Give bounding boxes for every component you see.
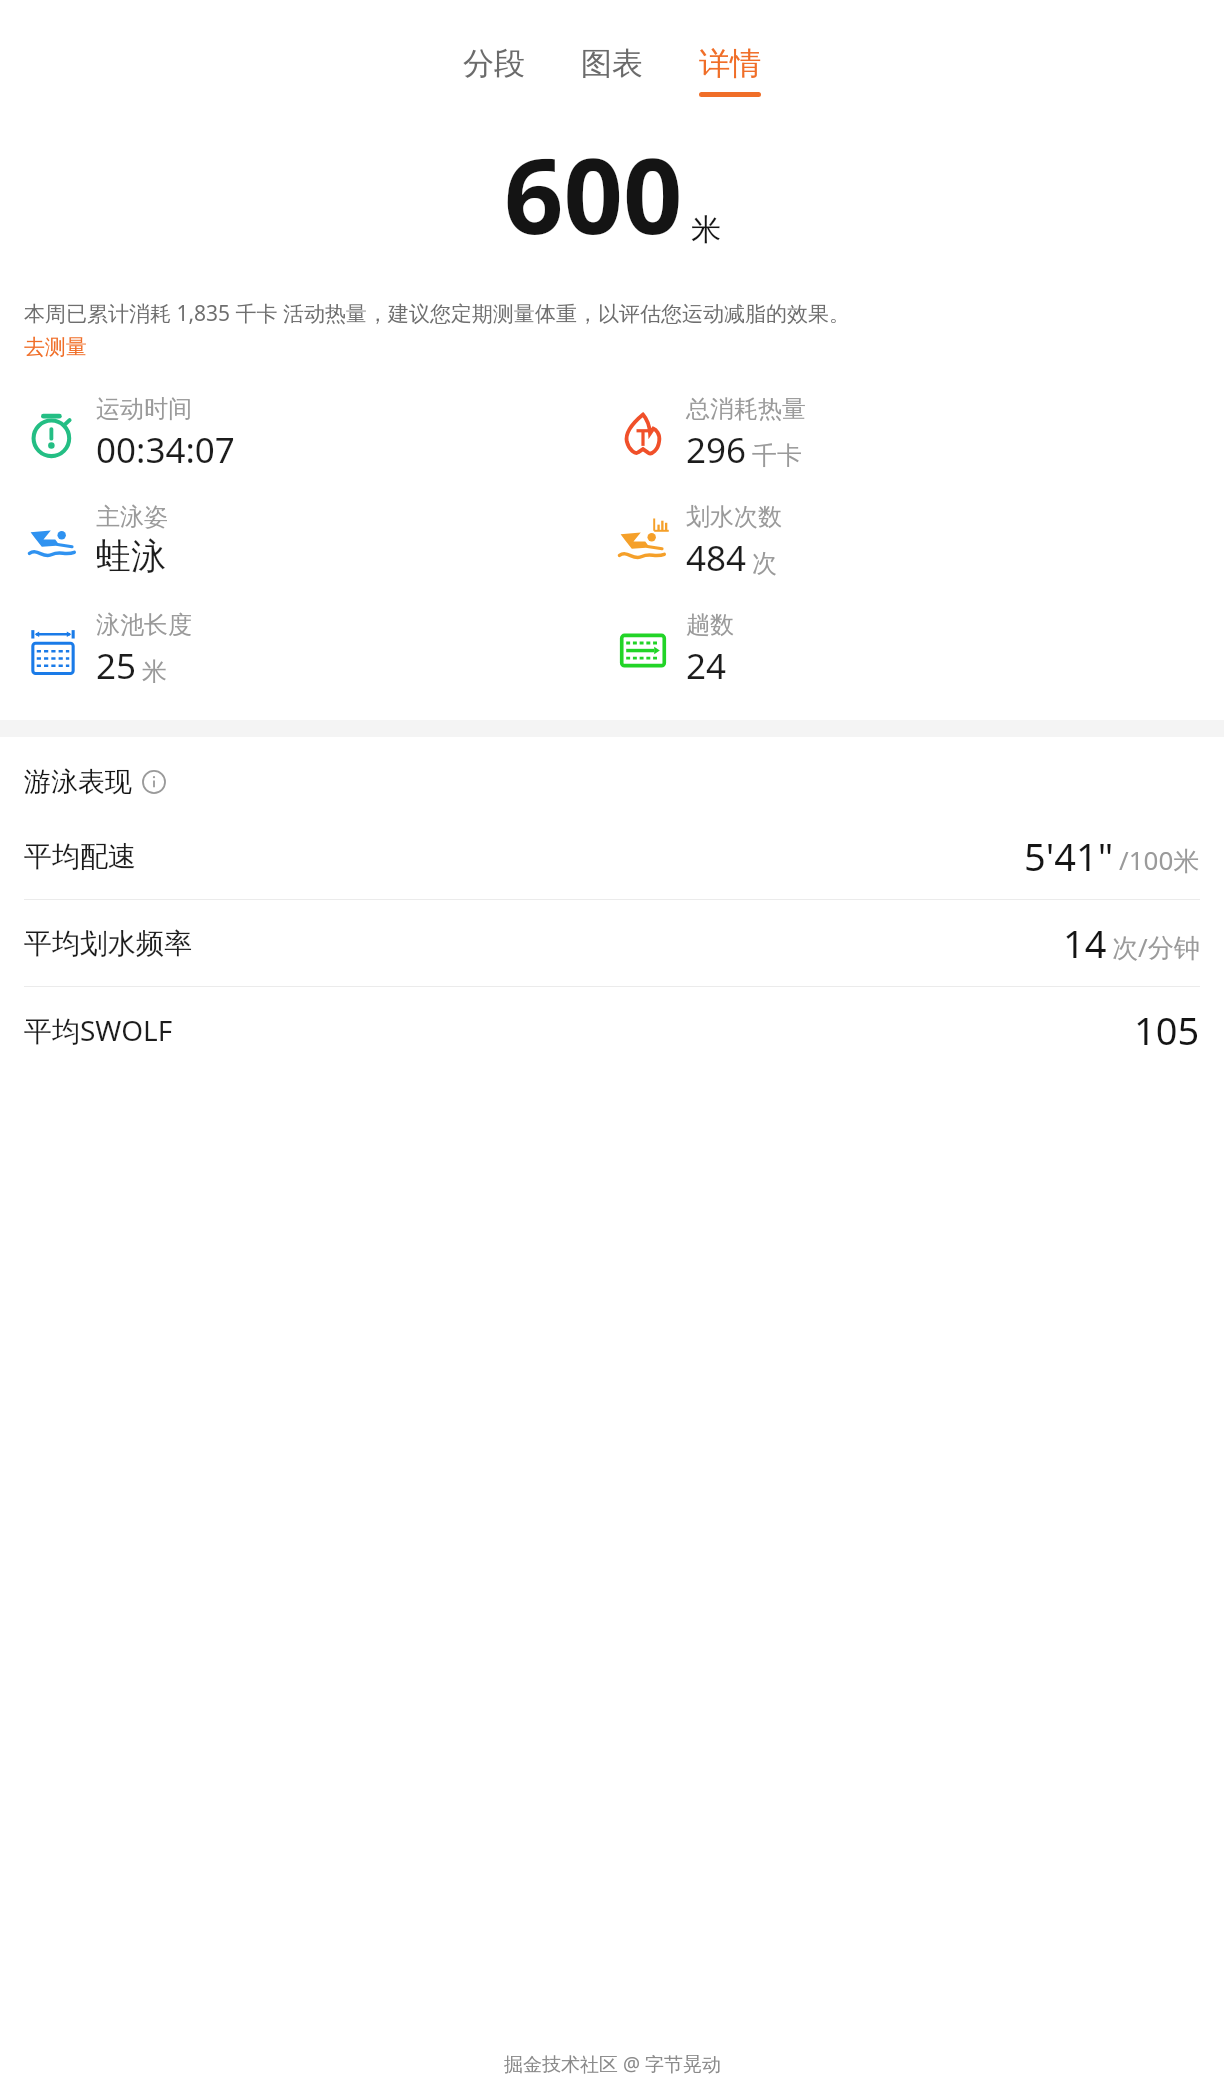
staticText: /100米: [1119, 842, 1200, 878]
button[interactable]: 运动时间: [22, 394, 612, 474]
staticText: 主泳姿: [96, 502, 168, 532]
button[interactable]: 平均划水频率: [0, 900, 1224, 986]
staticText: 平均SWOLF: [24, 1011, 173, 1049]
button[interactable]: 平均SWOLF: [0, 987, 1224, 1073]
staticText: 蛙泳: [96, 534, 166, 578]
staticText: 296: [686, 426, 747, 474]
staticText: 米: [142, 656, 167, 687]
staticText: 去测量: [24, 334, 87, 360]
button[interactable]: 划水次数: [612, 502, 1202, 582]
button[interactable]: 去测量: [24, 334, 87, 360]
staticText: 平均配速: [24, 839, 136, 874]
staticText: 游泳表现: [24, 765, 132, 799]
staticText: 总消耗热量: [686, 394, 806, 424]
staticText: 105: [1134, 1004, 1200, 1056]
button[interactable]: 总消耗热量: [612, 394, 1202, 474]
staticText: 详情: [699, 44, 761, 83]
button[interactable]: 主泳姿: [22, 502, 612, 578]
button[interactable]: 图表: [575, 44, 649, 92]
staticText: 次: [752, 548, 777, 579]
staticText: 25: [96, 642, 137, 690]
button[interactable]: 趟数: [612, 610, 1202, 690]
staticText: 本周已累计消耗 1,835 千卡 活动热量，建议您定期测量体重，以评估您运动减脂…: [24, 299, 851, 328]
staticText: 趟数: [686, 610, 734, 640]
button[interactable]: 泳池长度: [22, 610, 612, 690]
staticText: 分段: [463, 44, 525, 83]
staticText: 平均划水频率: [24, 926, 192, 961]
staticText: 米: [691, 211, 721, 249]
button[interactable]: 说明: [142, 770, 166, 794]
staticText: 00:34:07: [96, 426, 235, 474]
button[interactable]: 分段: [457, 44, 531, 92]
staticText: 484: [686, 534, 747, 582]
staticText: 5'41": [1024, 830, 1114, 882]
button[interactable]: 详情: [693, 44, 767, 97]
staticText: 次/分钟: [1112, 929, 1200, 965]
staticText: 千卡: [752, 440, 802, 471]
staticText: 图表: [581, 44, 643, 83]
staticText: 600: [504, 123, 683, 265]
staticText: 24: [686, 642, 727, 690]
staticText: 掘金技术社区 @ 字节晃动: [504, 2051, 721, 2077]
staticText: 划水次数: [686, 502, 782, 532]
staticText: 泳池长度: [96, 610, 192, 640]
button[interactable]: 平均配速: [0, 813, 1224, 899]
staticText: 14: [1063, 917, 1107, 969]
staticText: 运动时间: [96, 394, 192, 424]
